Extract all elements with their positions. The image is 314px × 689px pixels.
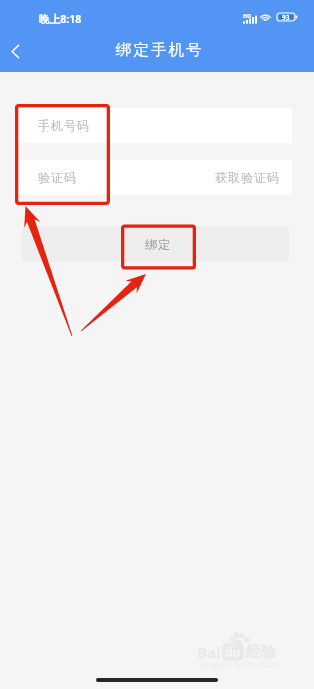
staticText: 绑定 xyxy=(145,237,171,252)
staticText: 手机号码 xyxy=(38,118,90,133)
staticText: du xyxy=(225,644,241,660)
staticText: 获取验证码 xyxy=(215,170,280,185)
button[interactable]: 验证码 xyxy=(16,170,77,185)
staticText: Bai xyxy=(197,642,221,662)
button[interactable]: Back xyxy=(0,32,34,70)
staticText: 93 xyxy=(282,13,290,22)
staticText: jingyan.baidu.com xyxy=(201,658,279,670)
button[interactable]: 绑定 xyxy=(22,226,289,262)
staticText: 晚上8:18 xyxy=(39,12,82,26)
button[interactable]: 获取验证码 xyxy=(203,161,292,194)
staticText: 经验 xyxy=(246,643,276,662)
staticText: 绑定手机号 xyxy=(116,40,204,60)
staticText: HD xyxy=(243,12,252,19)
button[interactable]: 手机号码 xyxy=(16,108,292,143)
